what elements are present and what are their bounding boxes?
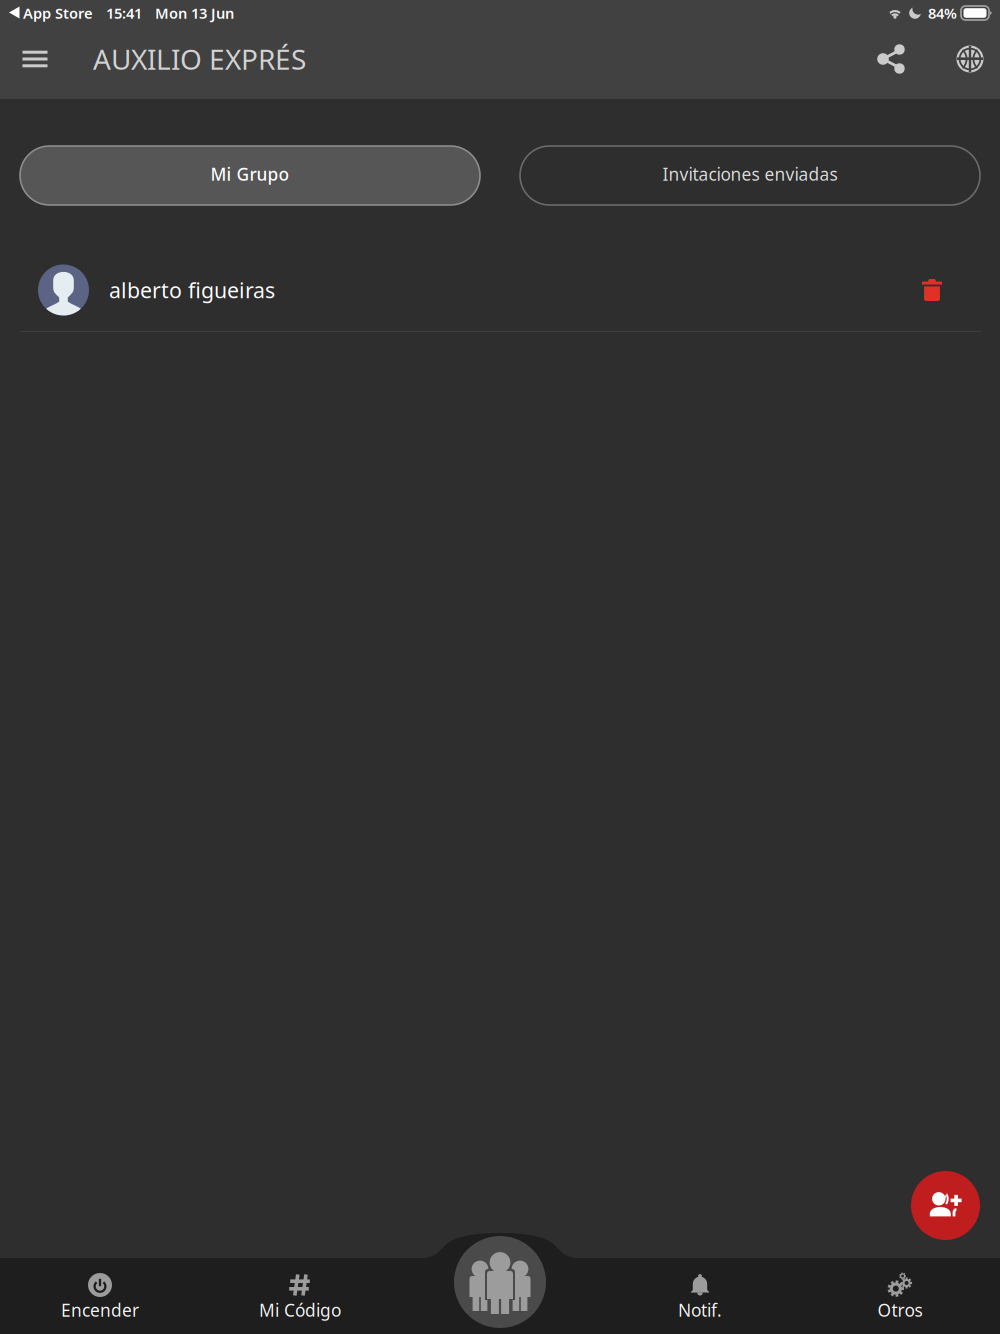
staticText: Notif. [678,1298,722,1321]
staticText: Mi Código [259,1298,341,1321]
staticText: Mi Grupo [210,162,289,185]
staticText: 84% [928,3,957,23]
staticText: alberto figueiras [109,276,275,304]
staticText: Encender [61,1298,139,1321]
button[interactable]: Share [865,31,921,87]
button[interactable]: Otros [800,1258,1000,1334]
button[interactable]: Group [454,1236,546,1328]
button[interactable]: Notif. [600,1258,800,1334]
button[interactable]: Menu [11,31,59,87]
button[interactable]: Encender [0,1258,200,1334]
staticText: Mon 13 Jun [155,3,234,23]
button[interactable]: Invitaciones enviadas [520,146,980,205]
staticText: AUXILIO EXPRÉS [93,40,306,78]
staticText: Otros [877,1298,922,1321]
staticText: 15:41 [106,3,142,23]
staticText: Invitaciones enviadas [662,162,837,185]
button[interactable]: Mi Código [200,1258,400,1334]
button[interactable]: Mi Grupo [20,146,480,205]
staticText: App Store [23,3,93,23]
button[interactable]: Delete member [907,265,957,315]
button[interactable]: Add member [911,1171,980,1240]
button[interactable]: AUXILIO EXPRÉS [93,31,306,87]
button[interactable]: Language [942,31,998,87]
